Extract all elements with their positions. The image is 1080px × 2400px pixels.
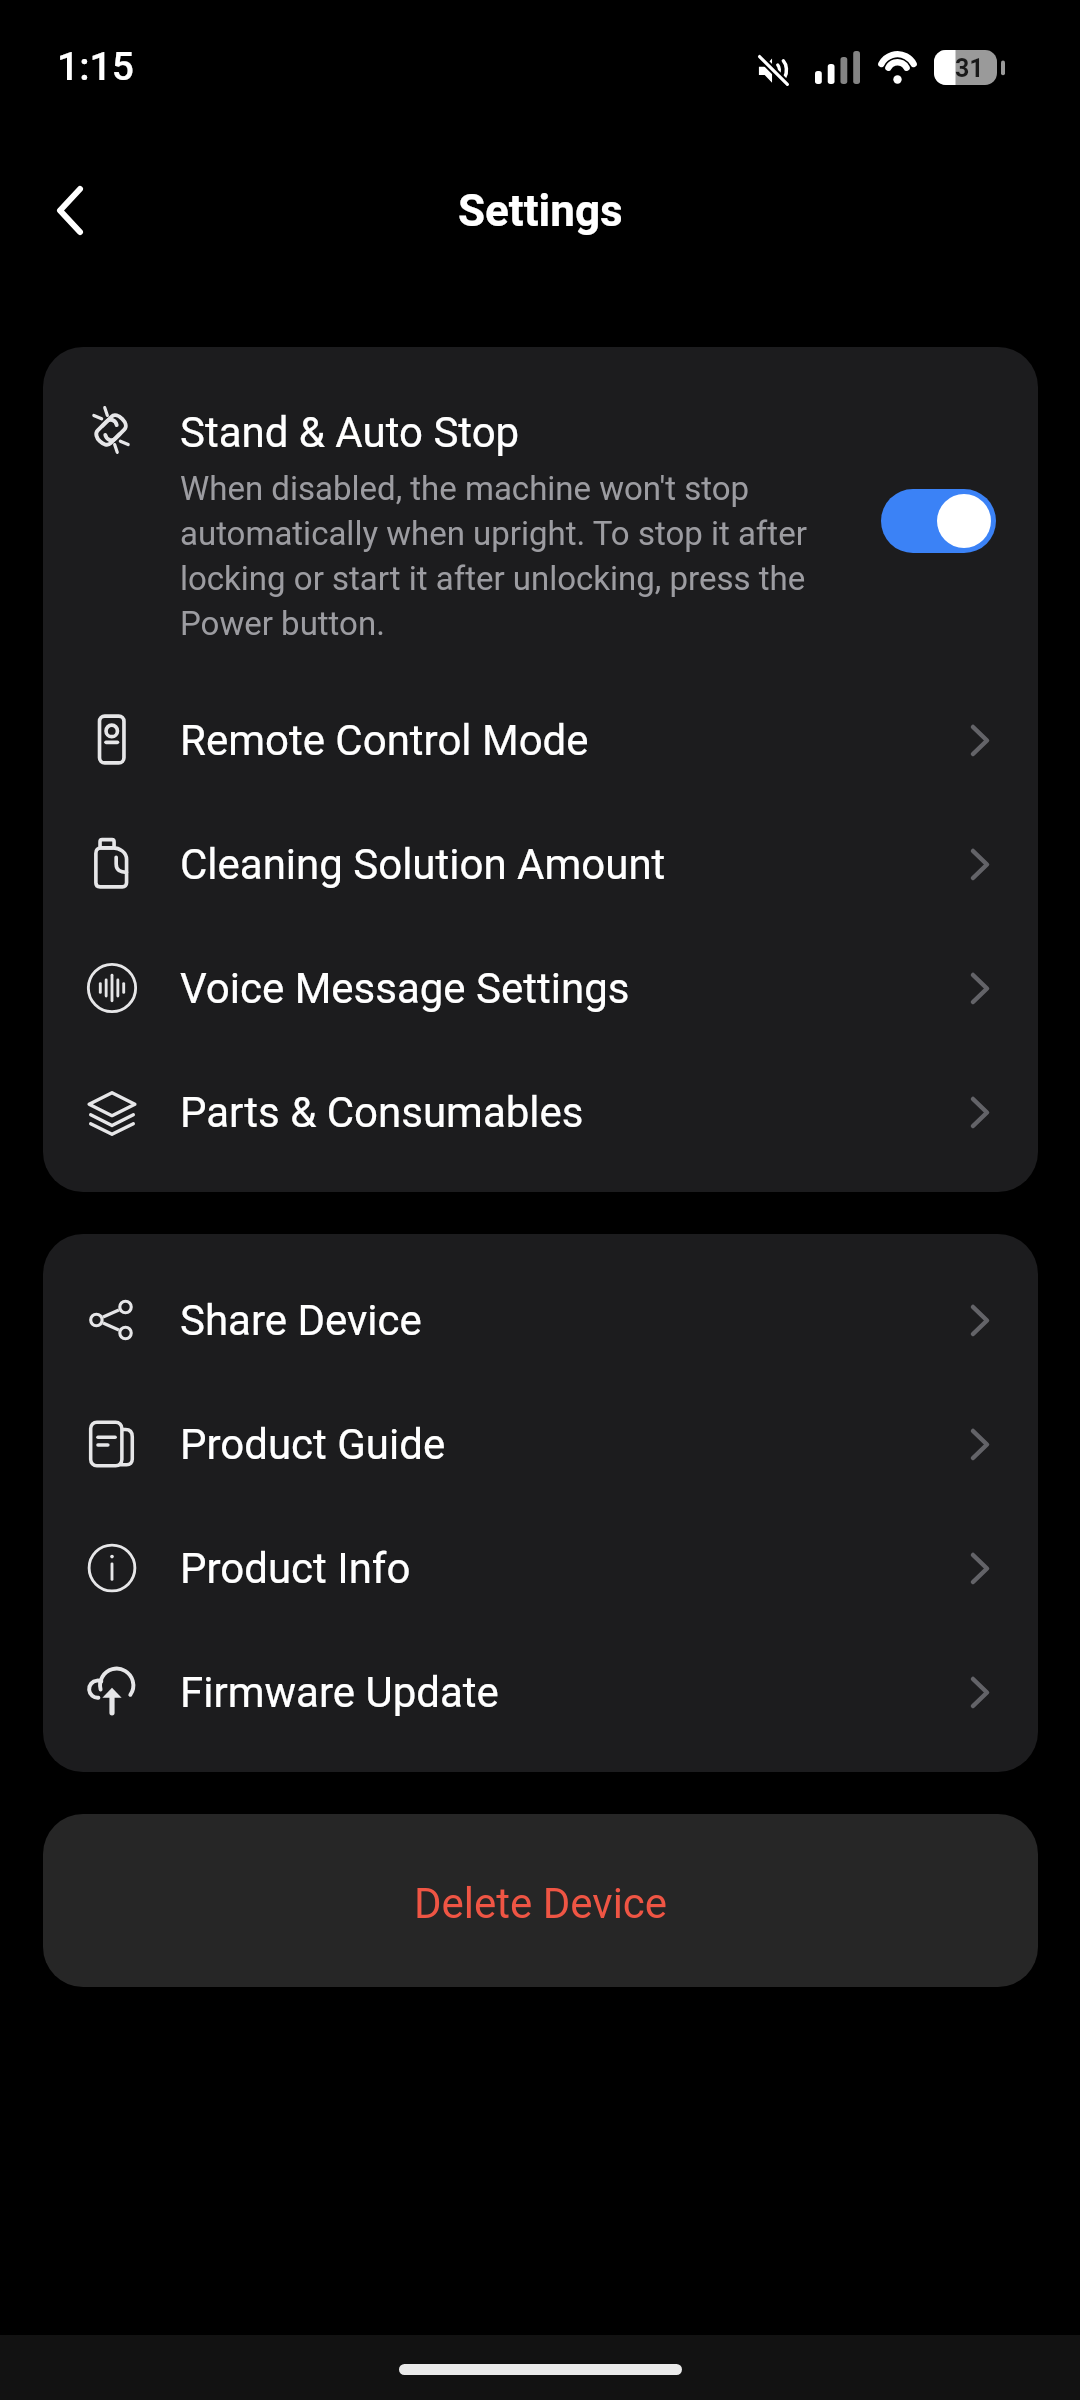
button[interactable]: Cleaning Solution Amount xyxy=(43,802,1038,926)
button[interactable]: Delete Device xyxy=(43,1814,1038,1987)
staticText: Stand & Auto Stop xyxy=(180,408,520,457)
staticText: Delete Device xyxy=(414,1879,668,1928)
staticText: Share Device xyxy=(180,1296,971,1345)
button[interactable]: Product Guide xyxy=(43,1382,1038,1506)
staticText: Cleaning Solution Amount xyxy=(180,840,971,889)
staticText: Settings xyxy=(458,185,623,237)
staticText: 31 xyxy=(955,54,984,83)
staticText: Product Info xyxy=(180,1544,971,1593)
button[interactable]: Product Info xyxy=(43,1506,1038,1630)
staticText: 1:15 xyxy=(57,44,134,90)
button[interactable]: Voice Message Settings xyxy=(43,926,1038,1050)
button[interactable]: Stand & Auto Stop xyxy=(43,347,1038,678)
button[interactable]: Stand and Auto Stop xyxy=(881,489,996,553)
staticText: Remote Control Mode xyxy=(180,716,971,765)
staticText: Voice Message Settings xyxy=(180,964,971,1013)
button[interactable]: Firmware Update xyxy=(43,1630,1038,1754)
staticText: Product Guide xyxy=(180,1420,971,1469)
button[interactable]: Back xyxy=(20,160,120,260)
button[interactable]: Parts & Consumables xyxy=(43,1050,1038,1174)
button[interactable]: Share Device xyxy=(43,1258,1038,1382)
staticText: Parts & Consumables xyxy=(180,1088,971,1137)
staticText: Firmware Update xyxy=(180,1668,971,1717)
button[interactable]: Remote Control Mode xyxy=(43,678,1038,802)
staticText: When disabled, the machine won't stop au… xyxy=(180,469,820,643)
